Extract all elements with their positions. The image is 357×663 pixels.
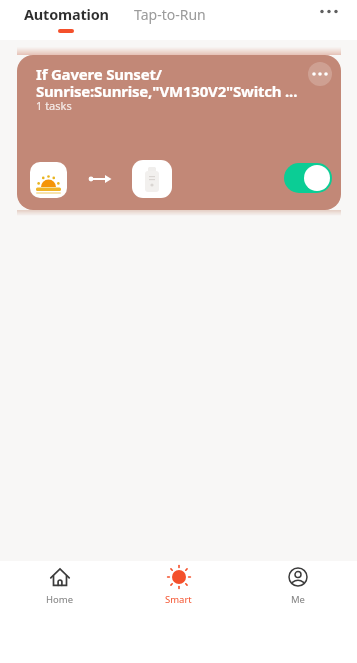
button[interactable]: Smart bbox=[119, 561, 238, 663]
button[interactable]: Home bbox=[0, 561, 119, 663]
button[interactable]: Automation bbox=[24, 4, 109, 24]
staticText: Sunrise:Sunrise,"VM130V2"Switch ... bbox=[36, 81, 298, 101]
staticText: If Gavere Sunset/ bbox=[36, 64, 162, 84]
staticText: Smart bbox=[165, 593, 192, 606]
button[interactable]: If Gavere Sunset/ bbox=[17, 55, 341, 210]
button[interactable] bbox=[284, 163, 332, 193]
staticText: Me bbox=[291, 593, 305, 606]
button[interactable]: Me bbox=[238, 561, 357, 663]
button[interactable] bbox=[308, 62, 332, 86]
staticText: Automation bbox=[24, 4, 109, 24]
button[interactable]: Tap-to-Run bbox=[134, 5, 206, 24]
button[interactable] bbox=[314, 2, 344, 24]
staticText: 1 tasks bbox=[36, 98, 72, 113]
staticText: Home bbox=[46, 593, 74, 606]
staticText: Tap-to-Run bbox=[134, 5, 206, 24]
